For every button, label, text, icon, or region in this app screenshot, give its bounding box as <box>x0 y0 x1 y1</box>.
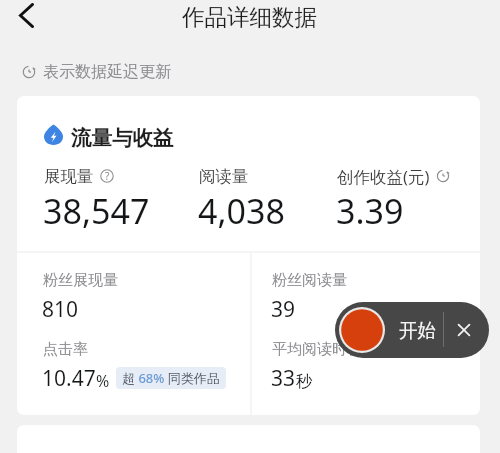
staticText: 表示数据延迟更新 <box>43 62 171 82</box>
button[interactable]: 阅读量 <box>199 163 249 189</box>
button[interactable]: 开始 <box>393 302 441 358</box>
button[interactable]: Back <box>9 0 43 32</box>
staticText: 粉丝展现量 <box>43 271 118 290</box>
button[interactable]: Close <box>445 302 489 358</box>
staticText: 3.39 <box>336 188 404 234</box>
staticText: 超 68% 同类作品 <box>122 369 220 387</box>
staticText: 展现量 <box>44 166 94 187</box>
staticText: 810 <box>42 295 79 324</box>
staticText: 秒 <box>296 371 313 392</box>
button[interactable]: 创作收益(元) <box>337 163 450 189</box>
staticText: 39 <box>271 295 296 324</box>
button[interactable]: Start recording <box>335 302 391 358</box>
staticText: ? <box>105 169 110 183</box>
staticText: 点击率 <box>43 340 88 359</box>
staticText: 作品详细数据 <box>182 3 317 31</box>
staticText: 开始 <box>399 319 436 342</box>
staticText: 粉丝阅读量 <box>272 271 347 290</box>
staticText: 33 <box>271 364 296 393</box>
staticText: 流量与收益 <box>71 125 174 151</box>
staticText: 阅读量 <box>199 166 249 187</box>
button[interactable]: 展现量 <box>44 163 114 189</box>
staticText: 10.47 <box>42 364 96 393</box>
staticText: 38,547 <box>43 188 150 234</box>
staticText: 创作收益(元) <box>337 165 430 188</box>
staticText: % <box>96 370 110 392</box>
staticText: 平均阅读时长 <box>272 340 362 359</box>
staticText: 4,038 <box>198 188 285 234</box>
button[interactable]: 表示数据延迟更新 <box>14 58 171 86</box>
